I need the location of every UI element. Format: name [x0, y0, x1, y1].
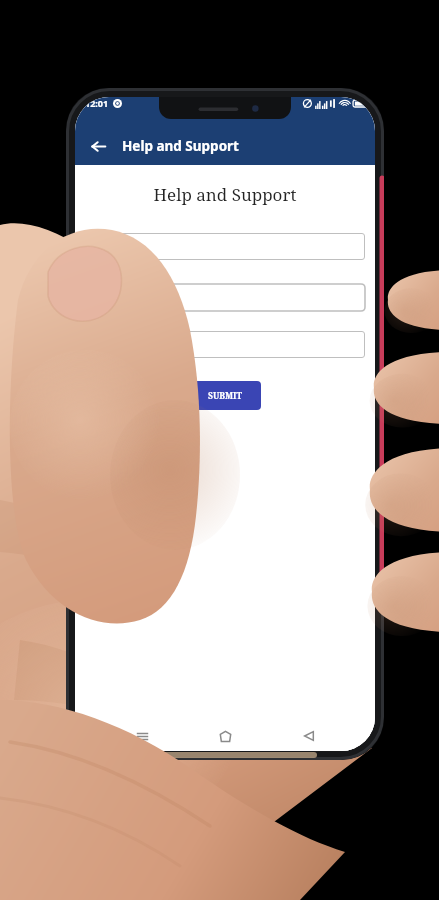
staticText: User Name [93, 240, 143, 253]
staticText: Help and Support [75, 183, 375, 206]
button[interactable]: SUBMIT [189, 381, 261, 410]
staticText: 12:01 [85, 97, 109, 109]
staticText: 9546767988 [93, 291, 156, 306]
button[interactable]: Back [85, 133, 111, 159]
button[interactable]: Mobile Number [85, 279, 365, 311]
staticText: SUBMIT [208, 390, 243, 402]
button[interactable]: Recents [125, 721, 159, 751]
button[interactable]: User Name [85, 233, 365, 260]
button[interactable]: Message [85, 331, 365, 358]
button[interactable]: Home [208, 721, 242, 751]
staticText: Help and Support [122, 137, 239, 155]
button[interactable]: Back [292, 721, 326, 751]
staticText: Mobile Number [96, 279, 142, 287]
